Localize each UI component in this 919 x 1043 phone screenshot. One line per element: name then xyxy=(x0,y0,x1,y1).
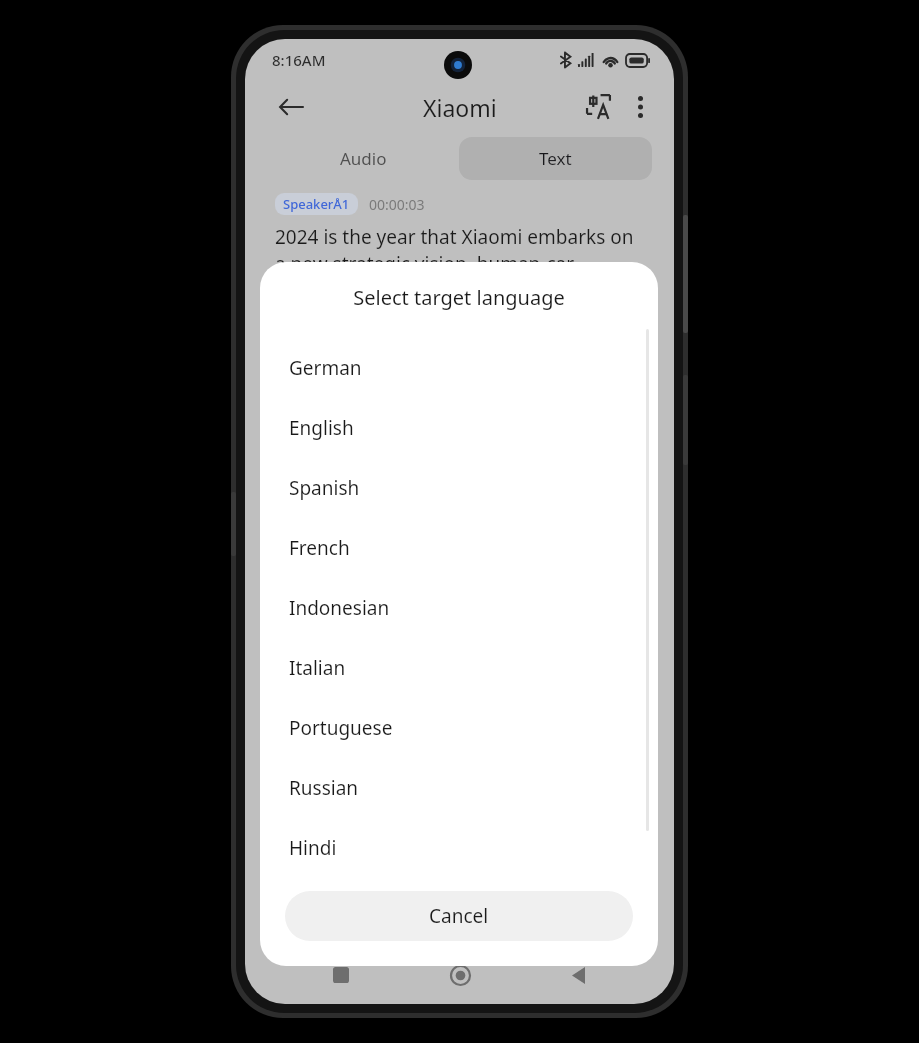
staticText: Text xyxy=(539,147,572,170)
staticText: 8:16AM xyxy=(272,50,326,70)
staticText: German xyxy=(289,355,362,381)
staticText: French xyxy=(289,535,350,561)
button[interactable]: English xyxy=(260,398,658,458)
button[interactable]: Back xyxy=(555,952,601,998)
button[interactable]: Italian xyxy=(260,638,658,698)
staticText: SpeakerÅ1 xyxy=(283,195,350,213)
button[interactable]: German xyxy=(260,338,658,398)
button[interactable]: Indonesian xyxy=(260,578,658,638)
button[interactable]: Portuguese xyxy=(260,698,658,758)
staticText: Audio xyxy=(340,147,387,170)
button[interactable]: Russian xyxy=(260,758,658,818)
staticText: English xyxy=(289,415,354,441)
button[interactable]: Home xyxy=(437,952,483,998)
staticText: Xiaomi xyxy=(423,92,497,123)
staticText: Hindi xyxy=(289,835,337,861)
button[interactable]: More options xyxy=(620,87,660,127)
button[interactable]: Text xyxy=(459,137,652,180)
button[interactable]: Spanish xyxy=(260,458,658,518)
button[interactable]: Translate xyxy=(578,86,620,128)
button[interactable]: Back xyxy=(271,87,311,127)
staticText: 00:00:03 xyxy=(369,195,425,214)
staticText: Russian xyxy=(289,775,359,801)
button[interactable]: French xyxy=(260,518,658,578)
button[interactable]: Recent apps xyxy=(318,952,364,998)
staticText: Indonesian xyxy=(289,595,390,621)
staticText: Select target language xyxy=(260,284,658,311)
staticText: Italian xyxy=(289,655,346,681)
button[interactable]: Audio xyxy=(267,137,459,180)
staticText: 2024 is the year that Xiaomi embarks on … xyxy=(275,224,648,277)
staticText: Cancel xyxy=(429,903,489,929)
staticText: Spanish xyxy=(289,475,360,501)
staticText: Portuguese xyxy=(289,715,393,741)
button[interactable]: Hindi xyxy=(260,818,658,878)
button[interactable]: Cancel xyxy=(285,891,633,941)
